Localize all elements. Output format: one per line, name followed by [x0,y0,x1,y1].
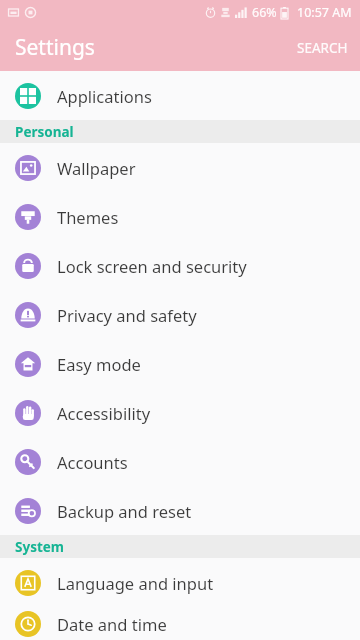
button[interactable]: Easy mode [0,339,360,388]
staticText: Applications [57,85,152,107]
staticText: Wallpaper [57,157,136,179]
staticText: Themes [57,206,119,228]
staticText: 10:57 AM [297,4,352,21]
staticText: SEARCH [297,39,348,57]
button[interactable]: Wallpaper [0,143,360,192]
staticText: Accessibility [57,402,151,424]
staticText: 66% [252,4,277,21]
staticText: System [15,538,65,556]
staticText: Backup and reset [57,500,192,522]
button[interactable]: Lock screen and security [0,241,360,290]
button[interactable]: Date and time [0,607,360,640]
button[interactable]: Backup and reset [0,486,360,535]
staticText: Privacy and safety [57,304,197,326]
button[interactable]: Accounts [0,437,360,486]
staticText: Lock screen and security [57,255,247,277]
staticText: Easy mode [57,353,141,375]
staticText: Language and input [57,572,214,594]
button[interactable]: Themes [0,192,360,241]
button[interactable]: Accessibility [0,388,360,437]
staticText: Settings [15,33,95,62]
staticText: Personal [15,123,74,141]
button[interactable]: SEARCH [285,29,360,67]
staticText: Date and time [57,613,167,635]
button[interactable]: Language and input [0,558,360,607]
button[interactable]: Privacy and safety [0,290,360,339]
staticText: Accounts [57,451,128,473]
button[interactable]: Applications [0,71,360,120]
